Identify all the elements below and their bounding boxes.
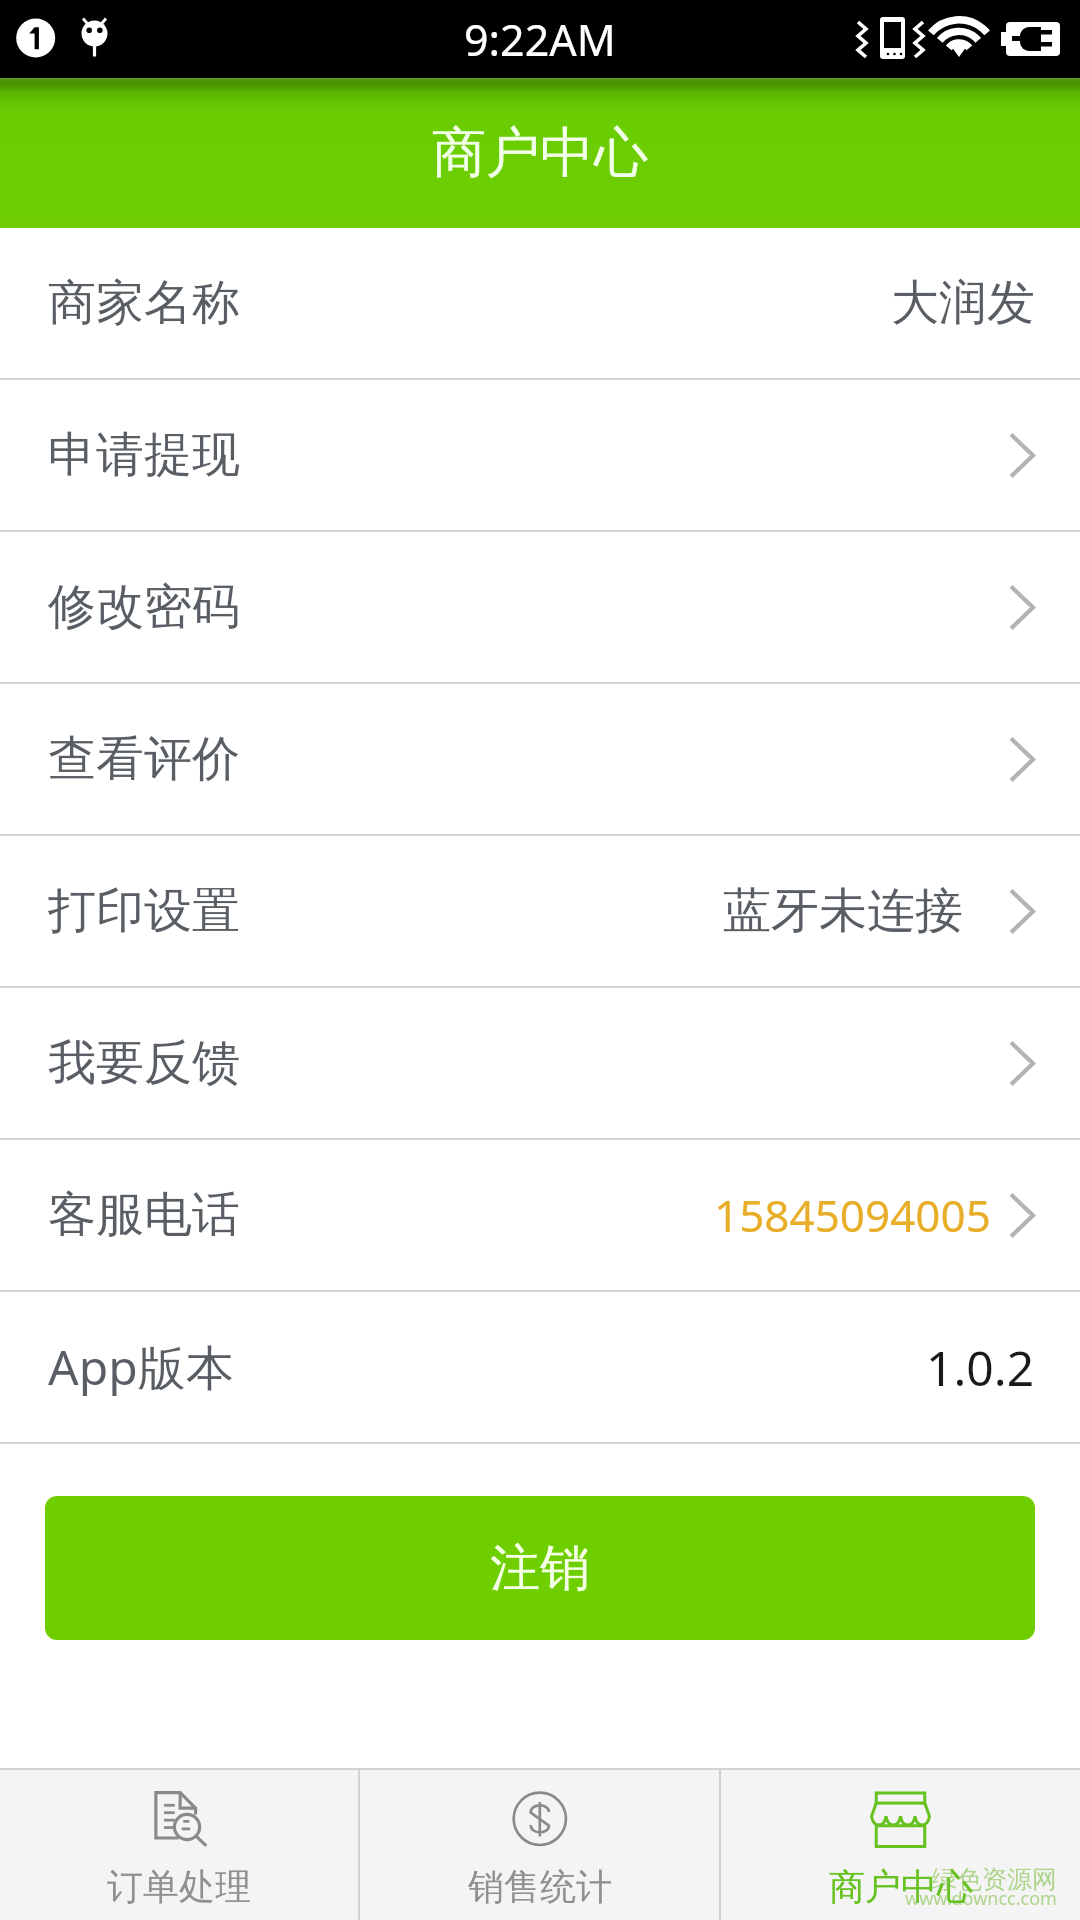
- staticText: 蓝牙未连接: [723, 881, 963, 941]
- staticText: 申请提现: [48, 425, 240, 485]
- staticText: 我要反馈: [48, 1033, 240, 1093]
- button[interactable]: 销售统计: [360, 1770, 719, 1920]
- staticText: 绿色资源网: [932, 1864, 1057, 1895]
- button[interactable]: 订单处理: [0, 1770, 358, 1920]
- staticText: App版本: [48, 1334, 234, 1400]
- staticText: 订单处理: [107, 1864, 251, 1909]
- button[interactable]: 商家名称: [0, 228, 1080, 378]
- staticText: 注销: [490, 1537, 590, 1600]
- button[interactable]: 商户中心: [721, 1770, 1080, 1920]
- button[interactable]: 修改密码: [0, 532, 1080, 682]
- staticText: 查看评价: [48, 729, 240, 789]
- staticText: 商户中心: [432, 119, 648, 187]
- staticText: 商家名称: [48, 273, 240, 333]
- staticText: 客服电话: [48, 1185, 240, 1245]
- staticText: 15845094005: [714, 1185, 991, 1245]
- button[interactable]: 查看评价: [0, 684, 1080, 834]
- button[interactable]: 客服电话: [0, 1140, 1080, 1290]
- staticText: www.downcc.com: [905, 1886, 1057, 1911]
- button[interactable]: 申请提现: [0, 380, 1080, 530]
- staticText: 9:22AM: [464, 10, 616, 69]
- staticText: 修改密码: [48, 577, 240, 637]
- staticText: 打印设置: [48, 881, 240, 941]
- button[interactable]: 打印设置: [0, 836, 1080, 986]
- button[interactable]: 注销: [45, 1496, 1035, 1640]
- button[interactable]: 我要反馈: [0, 988, 1080, 1138]
- button[interactable]: App版本: [0, 1292, 1080, 1442]
- staticText: 大润发: [891, 273, 1035, 333]
- staticText: 商户中心: [829, 1864, 973, 1909]
- staticText: 销售统计: [468, 1864, 612, 1909]
- staticText: 1.0.2: [926, 1335, 1035, 1400]
